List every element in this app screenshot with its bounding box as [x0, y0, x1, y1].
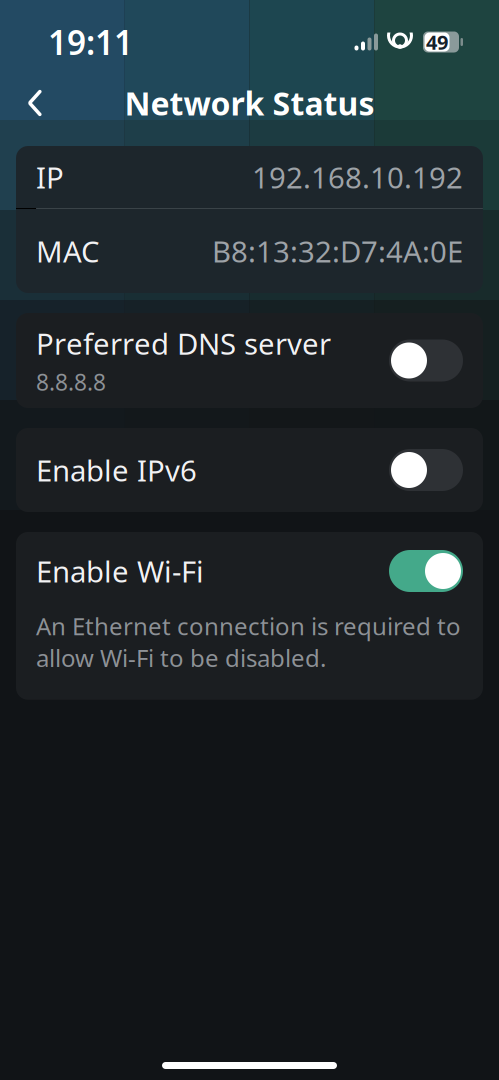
staticText: 19:11	[48, 20, 133, 64]
staticText: An Ethernet connection is required to al…	[36, 610, 461, 674]
button[interactable]: Preferred DNS server	[16, 313, 483, 408]
staticText: MAC	[36, 231, 100, 270]
staticText: Enable IPv6	[36, 450, 197, 489]
button[interactable]: Enable IPv6	[16, 428, 483, 512]
staticText: 49	[426, 29, 448, 55]
button[interactable]: Enable Wi-Fi	[16, 532, 483, 610]
staticText: Enable Wi-Fi	[36, 551, 204, 590]
staticText: B8:13:32:D7:4A:0E	[212, 231, 463, 270]
staticText: 8.8.8.8	[36, 367, 106, 397]
button[interactable]: Back	[8, 76, 62, 130]
staticText: 192.168.10.192	[252, 157, 463, 196]
staticText: IP	[36, 157, 64, 196]
staticText: Network Status	[124, 82, 374, 124]
staticText: Preferred DNS server	[36, 324, 331, 363]
